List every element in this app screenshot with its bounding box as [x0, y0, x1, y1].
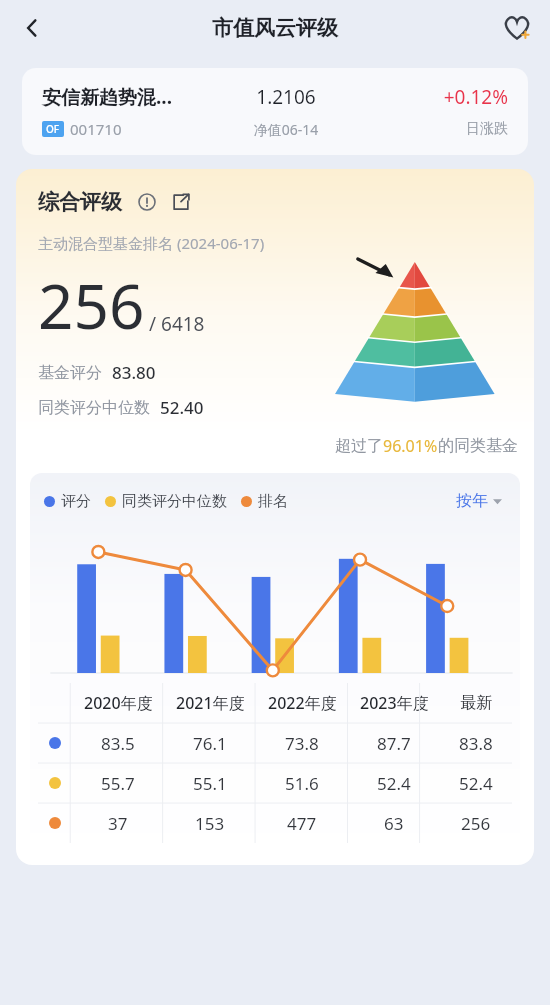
- staticText: 超过了: [335, 436, 383, 456]
- staticText: 净值06-14: [212, 120, 360, 139]
- staticText: 76.1: [193, 732, 227, 755]
- staticText: 同类评分中位数: [122, 492, 227, 511]
- staticText: 安信新趋势混...: [42, 84, 212, 110]
- staticText: 73.8: [285, 732, 319, 755]
- staticText: 63: [384, 812, 404, 835]
- staticText: OF: [46, 122, 60, 136]
- staticText: 2023年度: [360, 692, 429, 714]
- staticText: 83.80: [112, 361, 156, 384]
- staticText: 2020年度: [84, 692, 153, 714]
- staticText: 同类评分中位数: [38, 398, 150, 418]
- staticText: 256: [461, 812, 491, 835]
- staticText: 55.7: [101, 772, 135, 795]
- staticText: 55.1: [193, 772, 227, 795]
- staticText: 1.2106: [212, 84, 360, 110]
- staticText: +0.12%: [360, 84, 508, 110]
- staticText: 主动混合型基金排名 (2024-06-17): [38, 233, 265, 253]
- staticText: 综合评级: [38, 189, 122, 215]
- staticText: 52.40: [160, 396, 204, 419]
- staticText: 的同类基金: [438, 436, 518, 456]
- staticText: 477: [287, 812, 317, 835]
- staticText: 87.7: [377, 732, 411, 755]
- staticText: 37: [108, 812, 128, 835]
- staticText: 153: [195, 812, 225, 835]
- staticText: 83.8: [459, 732, 493, 755]
- staticText: 日涨跌: [360, 120, 508, 138]
- staticText: 2022年度: [268, 692, 337, 714]
- button[interactable]: Back: [8, 4, 56, 52]
- staticText: 排名: [258, 492, 288, 511]
- staticText: 评分: [61, 492, 91, 511]
- staticText: / 6418: [149, 311, 205, 337]
- button[interactable]: 按年: [452, 487, 506, 515]
- staticText: 市值风云评级: [212, 15, 338, 41]
- staticText: 256: [38, 263, 145, 347]
- button[interactable]: Share: [168, 189, 194, 215]
- staticText: 83.5: [101, 732, 135, 755]
- staticText: 最新: [460, 693, 492, 713]
- staticText: 001710: [70, 119, 122, 139]
- staticText: 96.01%: [383, 435, 438, 457]
- button[interactable]: 安信新趋势混...: [22, 68, 528, 155]
- staticText: 2021年度: [176, 692, 245, 714]
- button[interactable]: Add to favorites: [494, 5, 540, 51]
- button[interactable]: Info: [134, 189, 160, 215]
- staticText: 基金评分: [38, 363, 102, 383]
- staticText: 按年: [456, 491, 488, 511]
- staticText: 51.6: [285, 772, 319, 795]
- staticText: 52.4: [377, 772, 411, 795]
- staticText: 52.4: [459, 772, 493, 795]
